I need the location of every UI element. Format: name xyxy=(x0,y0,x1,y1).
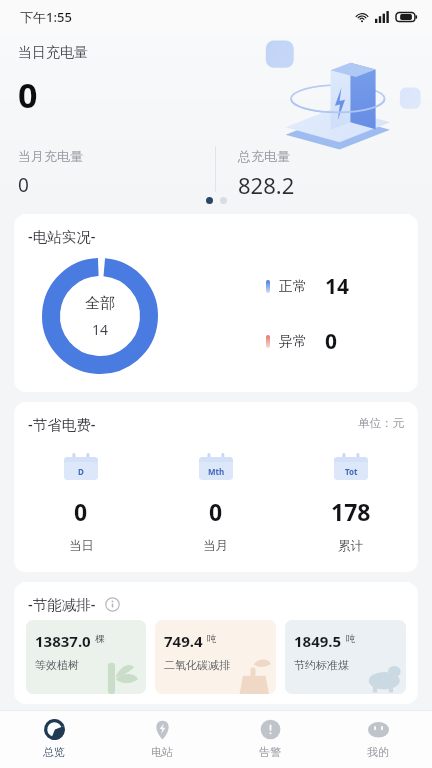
staticText: 棵 xyxy=(95,633,105,645)
staticText: 当月 xyxy=(203,538,228,554)
staticText: -节省电费- xyxy=(28,414,96,434)
button[interactable]: Tot xyxy=(283,453,418,554)
staticText: 749.4 xyxy=(164,631,203,651)
staticText: 0 xyxy=(209,496,223,527)
staticText: 等效植树 xyxy=(35,658,79,672)
staticText: 全部 xyxy=(85,294,115,313)
button[interactable]: 电站 xyxy=(108,710,216,768)
staticText: 0 xyxy=(74,496,88,527)
staticText: 我的 xyxy=(367,745,389,759)
button[interactable]: 13837.0 xyxy=(26,620,146,694)
staticText: 正常 xyxy=(279,278,307,296)
staticText: 当月充电量 xyxy=(18,148,83,164)
staticText: 节约标准煤 xyxy=(294,658,349,672)
button[interactable]: 告警 xyxy=(216,710,324,768)
staticText: Mth xyxy=(208,466,225,477)
staticText: 单位：元 xyxy=(358,416,404,430)
staticText: -电站实况- xyxy=(28,226,96,246)
staticText: 0 xyxy=(325,327,338,356)
staticText: Tot xyxy=(345,466,358,477)
button[interactable]: 749.4 xyxy=(155,620,276,694)
staticText: 当日 xyxy=(69,538,94,554)
staticText: 178 xyxy=(331,496,371,527)
staticText: D xyxy=(78,466,84,477)
staticText: 828.2 xyxy=(238,170,295,200)
button[interactable]: 我的 xyxy=(324,710,432,768)
staticText: 总充电量 xyxy=(238,148,290,164)
staticText: 异常 xyxy=(279,333,307,351)
staticText: 总览 xyxy=(43,745,65,759)
staticText: 下午1:55 xyxy=(20,8,72,26)
staticText: 0 xyxy=(18,172,29,198)
staticText: 二氧化碳减排 xyxy=(164,658,230,672)
staticText: 13837.0 xyxy=(35,631,91,651)
staticText: 吨 xyxy=(207,633,217,645)
staticText: 累计 xyxy=(338,538,363,554)
staticText: 1849.5 xyxy=(294,631,342,651)
button[interactable]: D xyxy=(14,453,148,554)
button[interactable]: 说明 xyxy=(105,597,120,612)
button[interactable]: 总览 xyxy=(0,710,108,768)
staticText: 14 xyxy=(325,272,350,301)
staticText: -节能减排- xyxy=(28,594,96,614)
button[interactable]: 1849.5 xyxy=(285,620,406,694)
staticText: 0 xyxy=(18,72,38,118)
button[interactable]: Mth xyxy=(148,453,283,554)
staticText: 告警 xyxy=(259,745,281,759)
staticText: 当日充电量 xyxy=(18,44,88,62)
staticText: 电站 xyxy=(151,745,173,759)
staticText: 吨 xyxy=(346,633,356,645)
staticText: 14 xyxy=(92,320,109,339)
